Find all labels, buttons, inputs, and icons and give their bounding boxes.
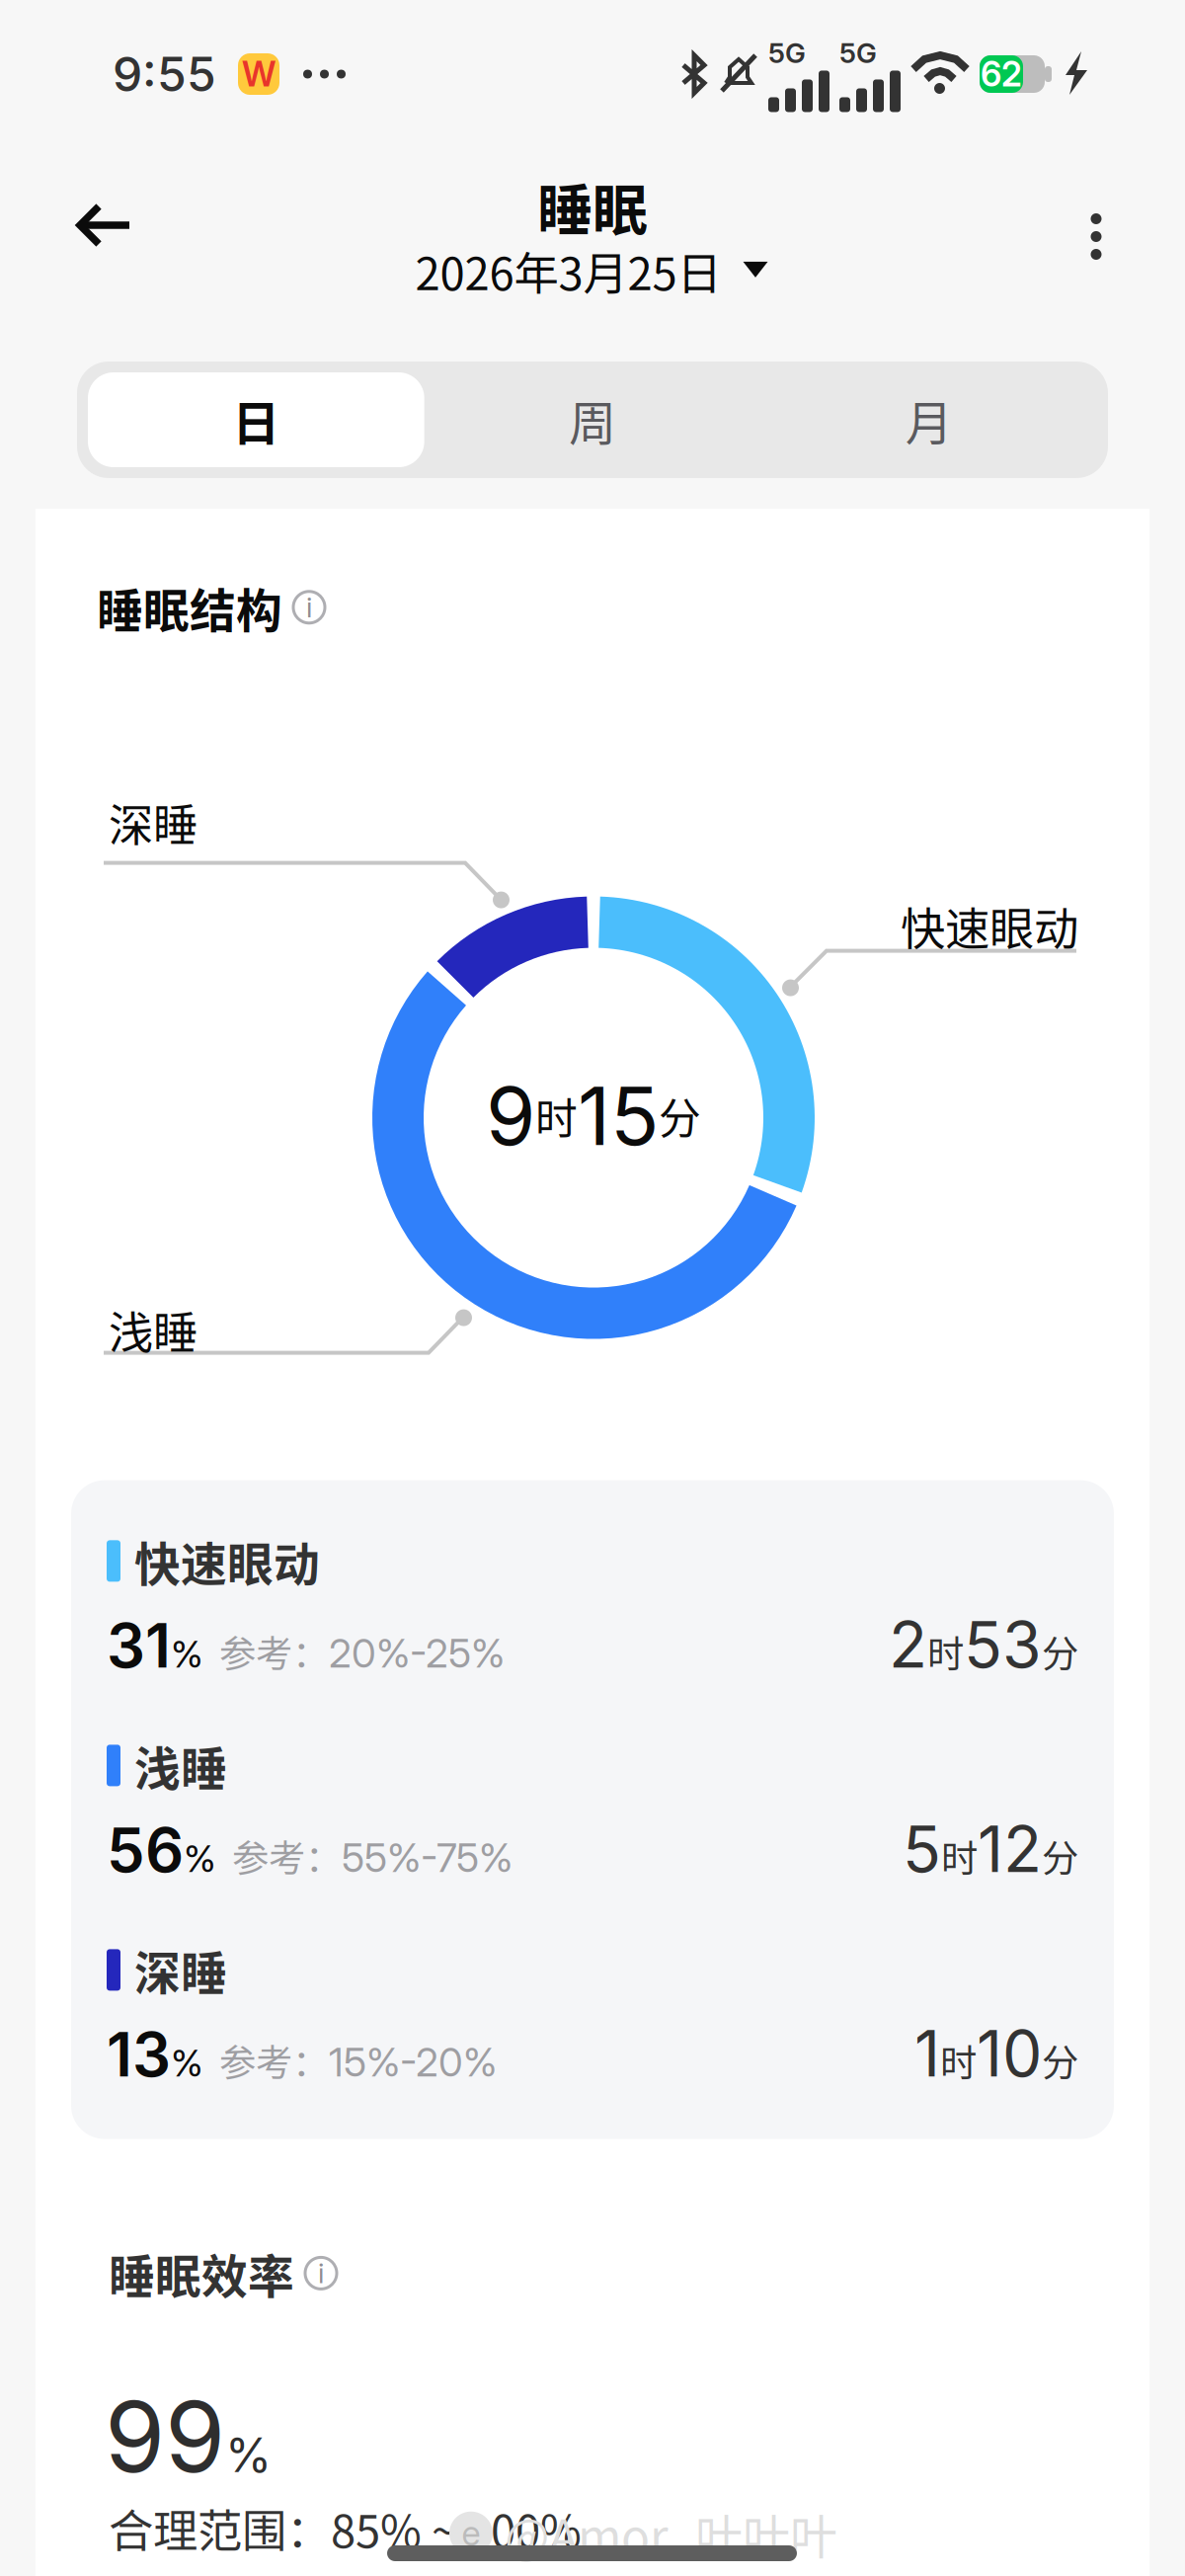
staticText: 日 (232, 385, 280, 454)
staticText: 睡眠结构 (97, 574, 282, 641)
staticText: 参考： (203, 2034, 329, 2087)
staticText: 月 (905, 385, 953, 454)
staticText: 1 (914, 2015, 940, 2092)
button[interactable]: 2026年3月25日 (415, 238, 770, 303)
staticText: 5G (768, 36, 806, 70)
staticText: 深睡 (134, 1937, 227, 2003)
staticText: 周 (569, 385, 616, 454)
staticText: 分 (659, 1085, 701, 1146)
staticText: 10 (977, 2015, 1042, 2092)
staticText: 9 (486, 1067, 535, 1164)
staticText: 快速眼动 (134, 1528, 320, 1594)
staticText: 时 (927, 1625, 964, 1678)
staticText: 5G (839, 36, 877, 70)
staticText: % (184, 1836, 216, 1881)
staticText: 13 (107, 2018, 171, 2091)
staticText: 31 (107, 1609, 171, 1682)
staticText: 睡眠效率 (109, 2240, 294, 2307)
staticText: 15 (578, 1067, 659, 1164)
staticText: 睡眠 (537, 166, 648, 246)
staticText: 时 (940, 2034, 977, 2087)
staticText: 53 (964, 1606, 1042, 1683)
button[interactable]: 月 (761, 372, 1097, 467)
button[interactable]: Back (52, 179, 157, 272)
staticText: % (171, 1632, 203, 1676)
staticText: 55%-75% (342, 1834, 513, 1881)
staticText: i (306, 590, 312, 624)
staticText: 快速眼动 (901, 894, 1078, 958)
staticText: % (171, 2041, 203, 2085)
staticText: 深睡 (109, 790, 197, 855)
staticText: 分 (1042, 2034, 1078, 2087)
staticText: 时 (535, 1085, 578, 1146)
staticText: 参考： (203, 1625, 329, 1678)
staticText: 15%-20% (329, 2038, 497, 2086)
staticText: 分 (1042, 1829, 1078, 1883)
staticText: 浅睡 (134, 1732, 227, 1799)
staticText: 12 (978, 1811, 1042, 1887)
staticText: 浅睡 (109, 1297, 197, 1362)
staticText: 99 (105, 2378, 225, 2496)
staticText: 20%-25% (329, 1629, 505, 1677)
staticText: @Amor_叶叶叶 (505, 2499, 837, 2568)
staticText: 时 (941, 1829, 978, 1883)
button[interactable]: 周 (424, 372, 761, 467)
staticText: 62 (981, 53, 1022, 95)
staticText: 9:55 (113, 45, 216, 103)
staticText: 5 (903, 1811, 941, 1887)
staticText: e (462, 2513, 480, 2554)
staticText: 2026年3月25日 (415, 238, 721, 303)
staticText: 2 (889, 1606, 927, 1683)
button[interactable]: More options (1065, 188, 1128, 285)
staticText: 分 (1042, 1625, 1078, 1678)
staticText: 参考： (216, 1829, 342, 1883)
staticText: % (225, 2426, 272, 2484)
staticText: 合理范围：85% ~ 100% (109, 2496, 582, 2560)
staticText: 56 (107, 1813, 184, 1886)
button[interactable]: 日 (88, 372, 424, 467)
staticText: i (318, 2256, 324, 2290)
staticText: W (242, 53, 276, 95)
